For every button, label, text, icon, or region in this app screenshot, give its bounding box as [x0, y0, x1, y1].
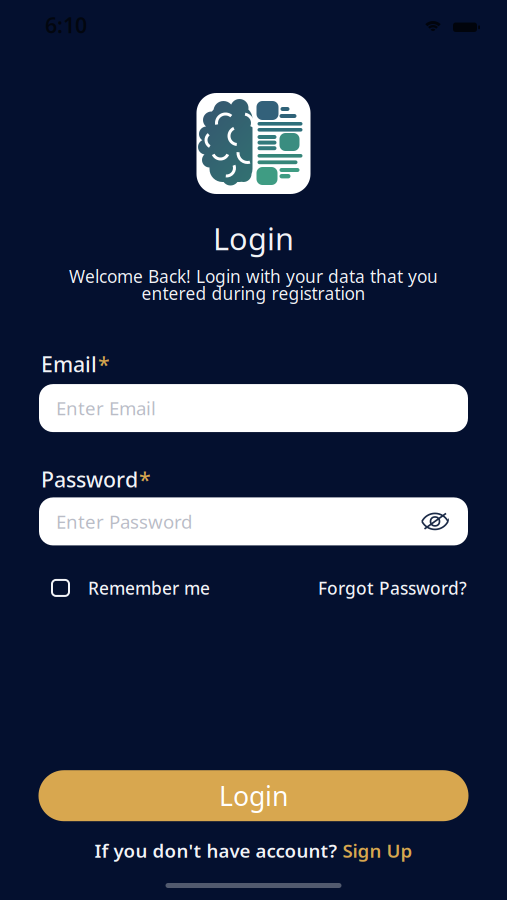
button[interactable]: Enter Email: [39, 384, 468, 432]
staticText: If you don't have account?: [94, 838, 337, 863]
button[interactable]: Show password: [409, 500, 461, 542]
staticText: Forgot Password?: [318, 576, 467, 599]
staticText: *: [98, 350, 110, 378]
staticText: Enter Email: [56, 396, 156, 420]
staticText: entered during registration: [141, 282, 365, 305]
button[interactable]: Remember me: [52, 576, 210, 599]
button[interactable]: Sign Up: [342, 838, 412, 863]
button[interactable]: Enter Password: [39, 497, 468, 545]
staticText: Welcome Back! Login with your data that …: [69, 265, 438, 288]
button[interactable]: Login: [38, 770, 468, 821]
staticText: Remember me: [88, 576, 210, 599]
staticText: Sign Up: [342, 838, 412, 863]
staticText: Login: [213, 218, 294, 259]
staticText: 6:10: [45, 11, 87, 39]
staticText: Enter Password: [56, 509, 192, 534]
staticText: Email: [41, 350, 97, 378]
staticText: *: [139, 465, 151, 493]
staticText: Login: [219, 778, 288, 813]
button[interactable]: Forgot Password?: [318, 576, 467, 599]
staticText: Password: [41, 465, 138, 493]
